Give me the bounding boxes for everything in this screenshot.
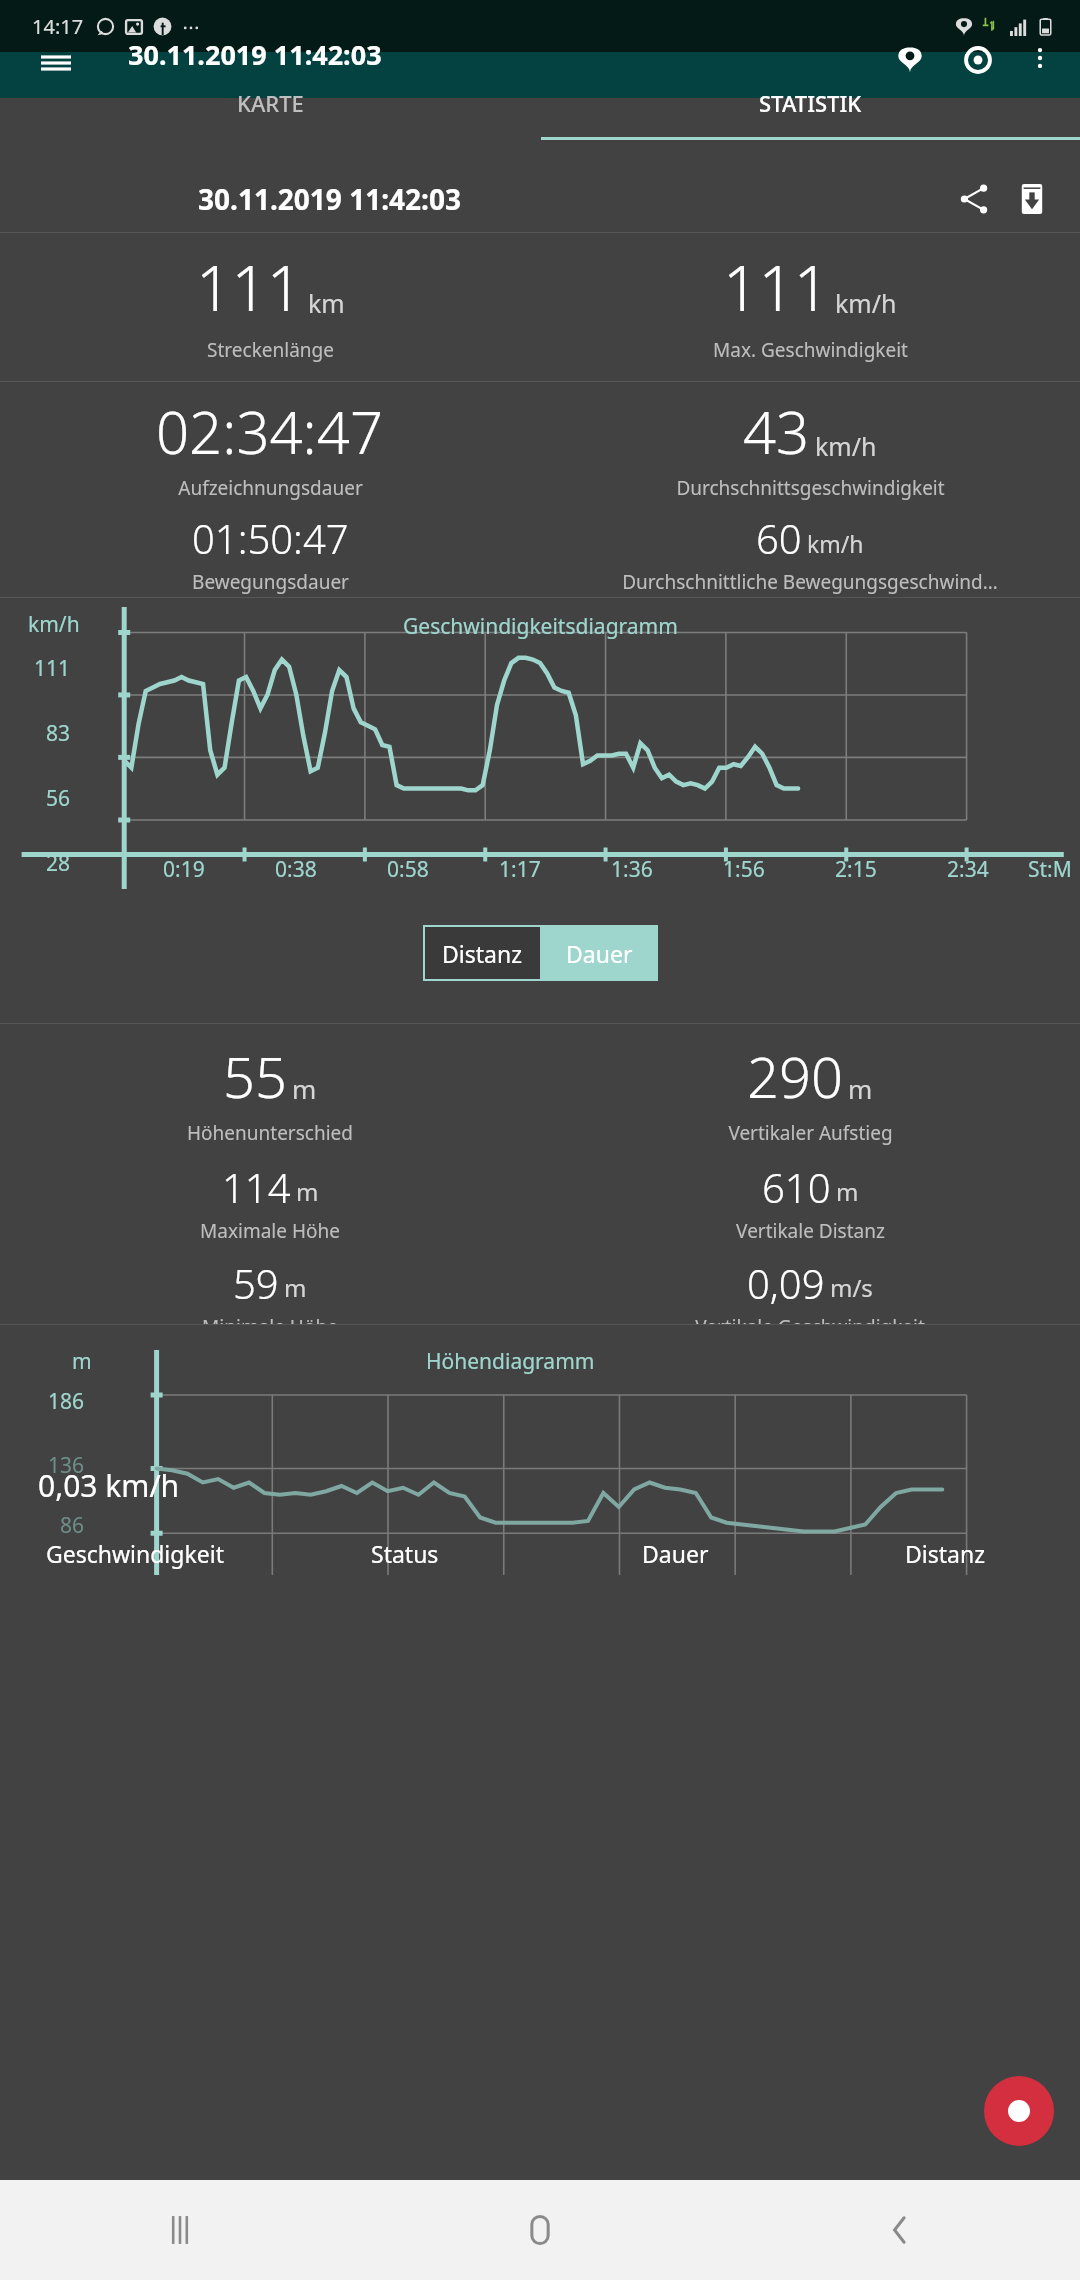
- button[interactable]: Dauer: [540, 925, 658, 981]
- staticText: m: [836, 1175, 859, 1208]
- staticText: Distanz: [442, 938, 522, 969]
- staticText: 55: [223, 1038, 287, 1114]
- button[interactable]: Center on track: [956, 38, 1000, 82]
- staticText: Geschwindigkeitsdiagramm: [403, 612, 678, 641]
- staticText: m: [848, 1071, 873, 1106]
- staticText: 1:36: [611, 855, 653, 884]
- staticText: 59: [233, 1256, 279, 1310]
- staticText: m: [284, 1271, 307, 1304]
- staticText: km: [308, 286, 345, 320]
- staticText: km/h: [835, 286, 897, 320]
- staticText: Vertikale Distanz: [736, 1218, 885, 1244]
- staticText: Vertikaler Aufstieg: [728, 1120, 893, 1146]
- staticText: 01:50:47: [192, 511, 349, 565]
- button[interactable]: Dauer: [540, 1538, 810, 1569]
- staticText: Maximale Höhe: [200, 1218, 340, 1244]
- staticText: KARTE: [237, 88, 304, 118]
- button[interactable]: Distanz: [423, 925, 540, 981]
- staticText: km/h: [807, 528, 864, 559]
- staticText: 28: [46, 849, 71, 878]
- staticText: St:M: [1028, 855, 1072, 884]
- button[interactable]: Distanz: [810, 1538, 1080, 1569]
- staticText: Geschwindigkeit: [46, 1538, 224, 1569]
- staticText: 14:17: [32, 13, 84, 40]
- staticText: 610: [762, 1160, 831, 1214]
- staticText: Aufzeichnungsdauer: [178, 475, 363, 501]
- button[interactable]: Share: [948, 173, 1000, 225]
- staticText: 1:17: [499, 855, 541, 884]
- staticText: 0:58: [387, 855, 429, 884]
- staticText: 290: [747, 1038, 843, 1114]
- staticText: 0:38: [275, 855, 317, 884]
- button[interactable]: Back: [720, 2180, 1080, 2280]
- staticText: Streckenlänge: [207, 337, 334, 363]
- staticText: Dauer: [566, 938, 633, 969]
- staticText: 86: [60, 1511, 85, 1540]
- staticText: STATISTIK: [759, 88, 862, 118]
- staticText: Minimale Höhe: [202, 1314, 338, 1324]
- staticText: 60: [756, 511, 802, 565]
- staticText: 2:15: [835, 855, 877, 884]
- staticText: 111: [196, 245, 303, 329]
- staticText: 30.11.2019 11:42:03: [198, 180, 461, 218]
- staticText: 0:19: [163, 855, 205, 884]
- staticText: Distanz: [905, 1538, 985, 1569]
- button[interactable]: Status: [270, 1538, 540, 1569]
- staticText: 02:34:47: [156, 392, 384, 471]
- staticText: 30.11.2019 11:42:03: [128, 36, 382, 73]
- staticText: 1:56: [723, 855, 765, 884]
- staticText: m: [296, 1175, 319, 1208]
- staticText: m: [292, 1071, 317, 1106]
- staticText: Durchschnittliche Bewegungsgeschwind…: [622, 569, 998, 595]
- staticText: 43: [743, 392, 810, 471]
- button[interactable]: Download: [1006, 173, 1058, 225]
- staticText: Höhendiagramm: [426, 1347, 595, 1376]
- staticText: Status: [371, 1538, 439, 1569]
- button[interactable]: Home: [360, 2180, 720, 2280]
- staticText: km/h: [815, 429, 877, 463]
- button[interactable]: Geschwindigkeit: [0, 1538, 270, 1569]
- staticText: 2:34: [947, 855, 989, 884]
- staticText: m: [72, 1347, 92, 1376]
- staticText: 111: [34, 654, 71, 683]
- staticText: Vertikale Geschwindigkeit: [695, 1314, 925, 1324]
- staticText: Dauer: [642, 1538, 709, 1569]
- staticText: 111: [723, 245, 830, 329]
- staticText: Höhenunterschied: [187, 1120, 353, 1146]
- staticText: Durchschnittsgeschwindigkeit: [676, 475, 945, 501]
- staticText: m/s: [830, 1271, 873, 1304]
- staticText: 186: [48, 1387, 85, 1416]
- button[interactable]: Record: [984, 2076, 1054, 2146]
- staticText: 114: [222, 1160, 291, 1214]
- staticText: Max. Geschwindigkeit: [713, 337, 908, 363]
- staticText: 136: [48, 1451, 85, 1480]
- button[interactable]: STATISTIK: [540, 98, 1080, 140]
- staticText: 83: [46, 719, 71, 748]
- staticText: Bewegungsdauer: [192, 569, 349, 595]
- button[interactable]: More options: [1020, 38, 1060, 78]
- staticText: km/h: [28, 610, 80, 639]
- button[interactable]: KARTE: [0, 98, 540, 140]
- staticText: 56: [46, 784, 71, 813]
- button[interactable]: Recent apps: [0, 2180, 360, 2280]
- button[interactable]: Menu: [36, 43, 76, 83]
- staticText: 0,09: [747, 1256, 825, 1310]
- button[interactable]: Location: [888, 38, 932, 82]
- staticText: 0,03 km/h: [38, 1465, 180, 1506]
